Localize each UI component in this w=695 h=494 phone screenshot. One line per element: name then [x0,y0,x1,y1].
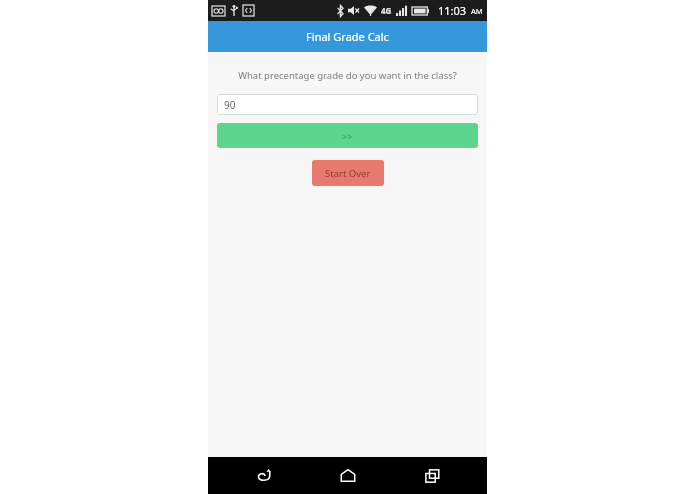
staticText: 11:03 [438,3,467,18]
staticText: AM [471,6,483,16]
staticText: 4G [381,5,392,16]
button[interactable]: Start Over [312,160,384,186]
staticText: 90 [224,98,236,112]
button[interactable]: Home [318,457,378,494]
staticText: Final Grade Calc [306,29,389,44]
button[interactable]: Recents [402,457,462,494]
staticText: >> [342,130,353,142]
button[interactable]: Back [233,457,293,494]
button[interactable]: >> [217,123,478,148]
staticText: Start Over [325,167,371,180]
staticText: What precentage grade do you want in the… [238,69,457,82]
button[interactable]: 90 [217,94,478,115]
